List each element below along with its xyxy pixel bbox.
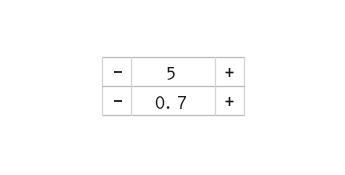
- button[interactable]: 5: [132, 57, 215, 86]
- button[interactable]: Decrease 5: [102, 57, 132, 86]
- button[interactable]: 0.7: [132, 86, 215, 115]
- button[interactable]: Increase 0.7: [215, 86, 245, 115]
- button[interactable]: Increase 5: [215, 57, 245, 86]
- staticText: 0.7: [154, 93, 188, 114]
- staticText: 5: [165, 64, 177, 85]
- button[interactable]: Decrease 0.7: [102, 86, 132, 115]
